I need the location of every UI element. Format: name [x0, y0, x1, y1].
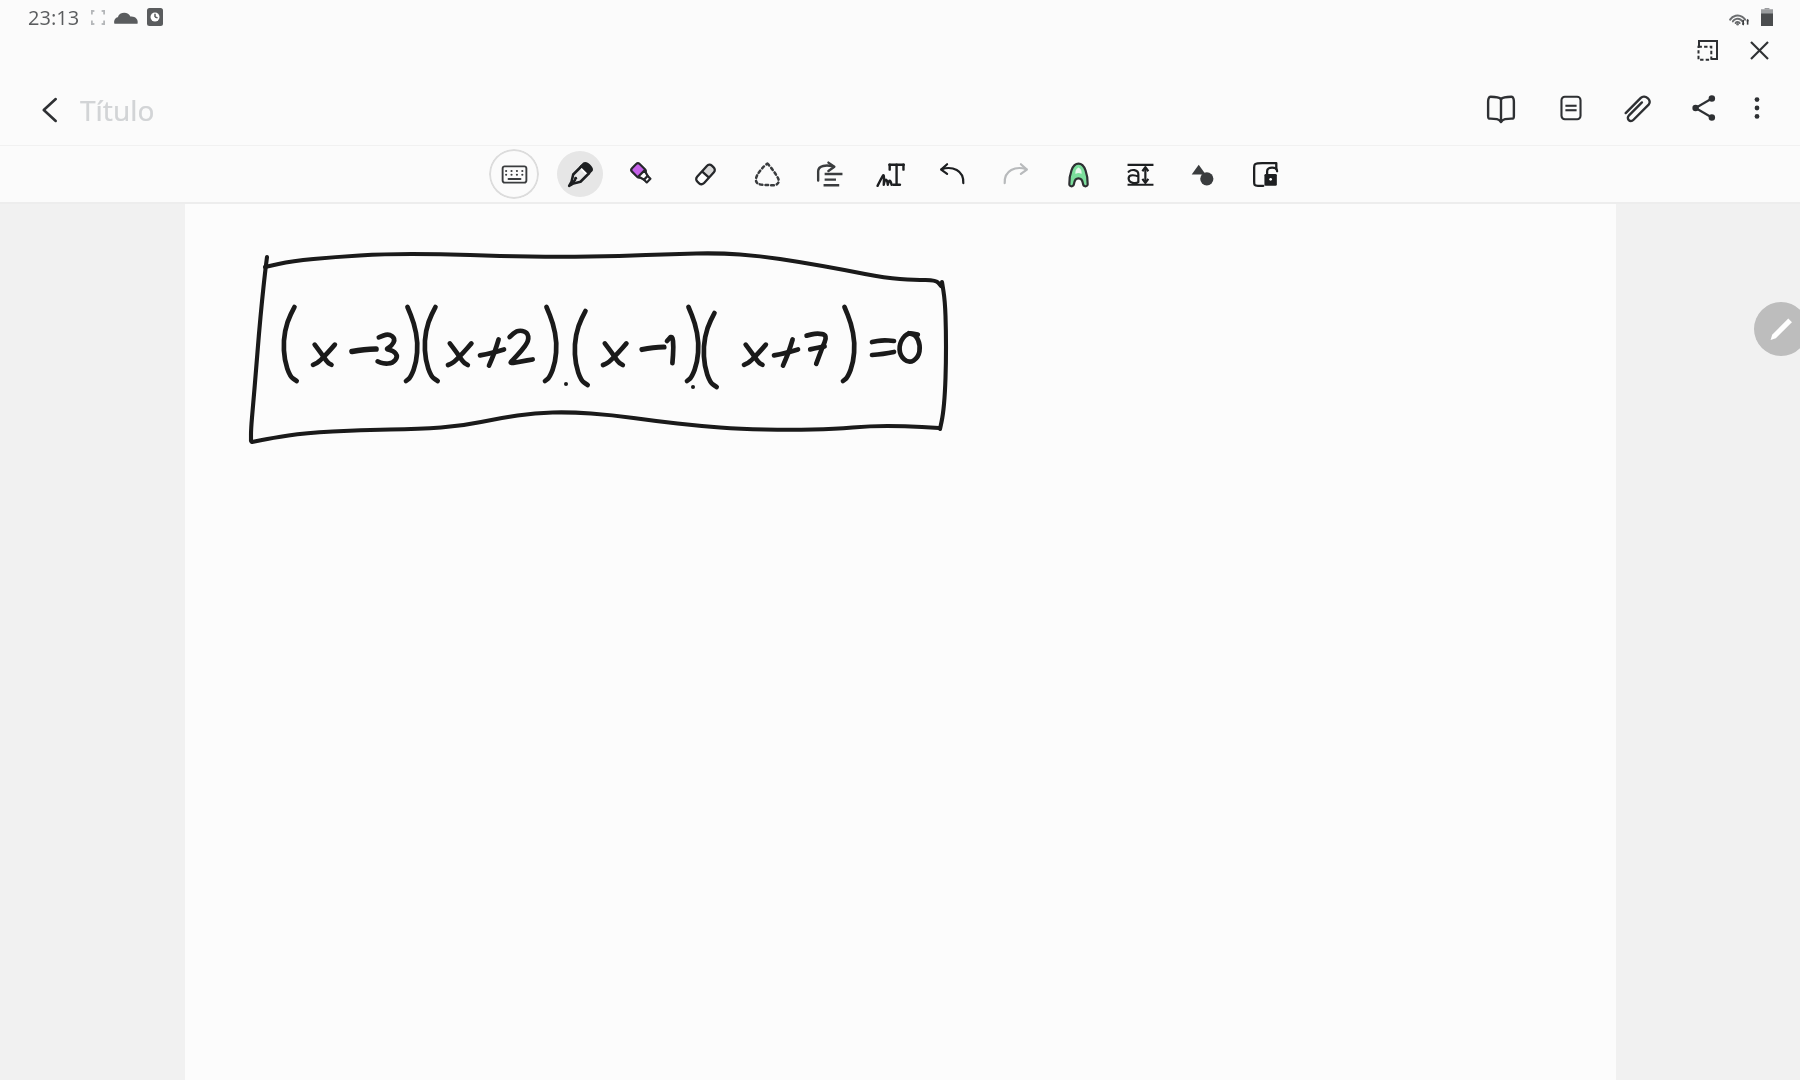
- button[interactable]: Reading mode: [1472, 79, 1530, 137]
- button[interactable]: Close: [1735, 26, 1783, 74]
- staticText: 23:13: [28, 4, 80, 31]
- button[interactable]: Straighten: [806, 151, 852, 197]
- button[interactable]: Redo: [992, 151, 1038, 197]
- button[interactable]: Highlighter: [619, 151, 665, 197]
- button[interactable]: Undo: [929, 151, 975, 197]
- button[interactable]: Lock: [1242, 151, 1288, 197]
- button[interactable]: Text size: [1117, 151, 1163, 197]
- button[interactable]: Edit: [1754, 302, 1800, 356]
- button[interactable]: More options: [1728, 79, 1786, 137]
- button[interactable]: Selection: [744, 151, 790, 197]
- button[interactable]: Eraser: [682, 151, 728, 197]
- button[interactable]: Shape recognition: [1055, 151, 1101, 197]
- button[interactable]: Shapes: [1179, 151, 1225, 197]
- button[interactable]: Attach: [1609, 79, 1667, 137]
- button[interactable]: Navigate up: [24, 84, 76, 136]
- staticText: Título: [80, 91, 155, 129]
- button[interactable]: Keyboard: [489, 149, 539, 199]
- button[interactable]: Pen: [557, 151, 603, 197]
- button[interactable]: Convert to text: [867, 151, 913, 197]
- button[interactable]: Share: [1675, 79, 1733, 137]
- button[interactable]: Note view: [1542, 79, 1600, 137]
- button[interactable]: Pop-up view: [1684, 26, 1732, 74]
